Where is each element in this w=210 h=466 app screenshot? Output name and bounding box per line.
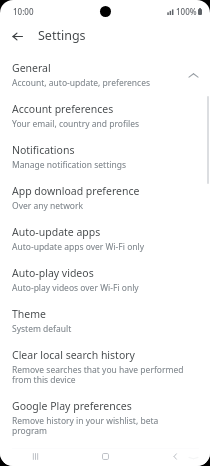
staticText: Auto-update apps — [12, 225, 101, 239]
staticText: Account, auto-update, preferences — [12, 77, 151, 89]
staticText: Auto-update apps over Wi-Fi only — [12, 241, 145, 253]
button[interactable]: Clear local search history — [0, 342, 210, 393]
staticText: Over any network — [12, 200, 84, 212]
staticText: Clear local search history — [12, 348, 135, 362]
staticText: 10:00 — [13, 6, 34, 17]
staticText: Auto-play videos over Wi-Fi only — [12, 282, 139, 294]
staticText: Google Play preferences — [12, 399, 132, 413]
button[interactable]: Google Play preferences — [0, 393, 210, 444]
staticText: Remove searches that you have performed … — [12, 364, 192, 386]
button[interactable]: Back — [140, 447, 210, 466]
staticText: 100% — [176, 6, 197, 17]
button[interactable]: Auto-play videos — [0, 260, 210, 301]
staticText: Account preferences — [12, 102, 114, 116]
button[interactable]: General — [0, 55, 210, 96]
button[interactable]: Recent apps — [0, 447, 70, 466]
button[interactable]: Back — [7, 26, 27, 46]
staticText: Remove history in your wishlist, beta pr… — [12, 415, 192, 437]
staticText: Your email, country and profiles — [12, 118, 140, 130]
button[interactable]: App download preference — [0, 178, 210, 219]
button[interactable]: Theme — [0, 301, 210, 342]
staticText: Manage notification settings — [12, 159, 126, 171]
button[interactable]: Home — [70, 447, 140, 466]
button[interactable]: Account preferences — [0, 96, 210, 137]
staticText: Notifications — [12, 143, 75, 157]
staticText: Theme — [12, 307, 46, 321]
staticText: General — [12, 61, 51, 75]
button[interactable]: Auto-update apps — [0, 219, 210, 260]
staticText: System default — [12, 323, 72, 335]
staticText: Auto-play videos — [12, 266, 94, 280]
staticText: App download preference — [12, 184, 140, 198]
button[interactable]: User controls — [0, 451, 210, 466]
staticText: Settings — [38, 27, 86, 44]
staticText: User controls — [12, 457, 78, 459]
button[interactable]: Notifications — [0, 137, 210, 178]
